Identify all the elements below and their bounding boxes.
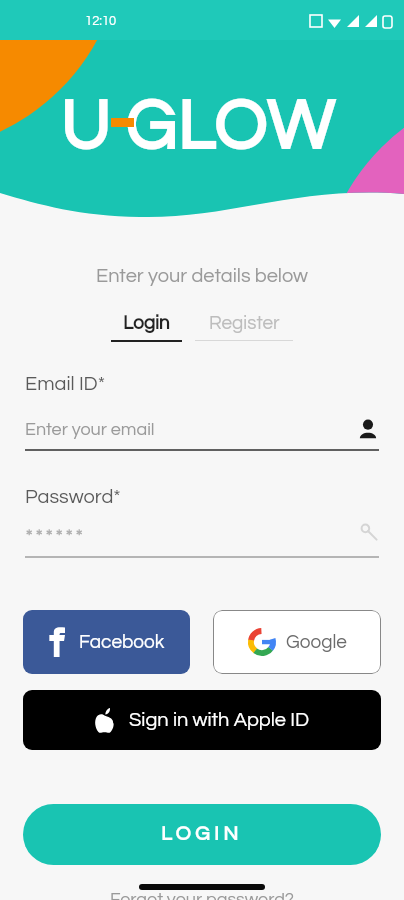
staticText: Sign in with Apple ID xyxy=(129,710,310,731)
staticText: LOGIN xyxy=(161,824,243,845)
staticText: Enter your details below xyxy=(0,266,404,287)
staticText: Email ID* xyxy=(25,374,106,395)
staticText: Password* xyxy=(25,487,121,508)
button[interactable]: Sign in with Apple ID xyxy=(23,690,381,750)
staticText: Enter your email xyxy=(25,420,357,439)
staticText: GLOW xyxy=(125,92,335,164)
staticText: Register xyxy=(209,313,280,333)
button[interactable]: Forgot your password? xyxy=(0,890,404,900)
button[interactable]: Facebook xyxy=(23,610,190,674)
button[interactable]: Register xyxy=(195,313,293,341)
button[interactable]: Login xyxy=(111,313,182,342)
button[interactable]: LOGIN xyxy=(23,804,381,865)
staticText: 12:10 xyxy=(85,14,117,27)
other: Password xyxy=(359,522,379,542)
staticText: Google xyxy=(286,632,347,652)
staticText: Facebook xyxy=(79,632,165,652)
other: User xyxy=(357,418,379,440)
button[interactable]: Google xyxy=(213,610,381,674)
staticText: Login xyxy=(123,313,170,333)
staticText: U xyxy=(60,92,110,164)
